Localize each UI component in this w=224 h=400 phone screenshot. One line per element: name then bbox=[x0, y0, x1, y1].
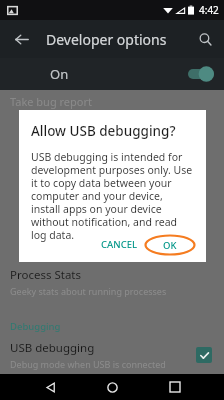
button[interactable]: Back bbox=[8, 26, 34, 52]
button[interactable]: USB debugging checkbox bbox=[196, 347, 212, 363]
staticText: On bbox=[50, 65, 69, 83]
button[interactable]: OK bbox=[144, 234, 196, 256]
staticText: USB debugging is intended for developmen… bbox=[31, 150, 194, 242]
staticText: Process Stats bbox=[10, 267, 82, 283]
staticText: 4:42 bbox=[199, 3, 219, 17]
button[interactable]: Recent apps bbox=[162, 374, 188, 400]
staticText: CANCEL bbox=[101, 238, 138, 251]
staticText: USB debugging bbox=[10, 340, 95, 356]
staticText: OK bbox=[163, 239, 177, 252]
button[interactable]: Process Stats bbox=[0, 264, 224, 300]
button[interactable]: On bbox=[0, 58, 224, 90]
staticText: Developer options bbox=[46, 30, 167, 49]
staticText: Debug mode when USB is connected bbox=[10, 358, 166, 370]
button[interactable]: Search bbox=[192, 26, 218, 52]
button[interactable]: Home bbox=[99, 374, 125, 400]
staticText: Debugging bbox=[10, 320, 61, 333]
staticText: Allow USB debugging? bbox=[31, 122, 176, 140]
staticText: Take bug report bbox=[10, 94, 92, 109]
button[interactable]: USB debugging bbox=[0, 336, 224, 374]
button[interactable]: Back bbox=[37, 374, 63, 400]
staticText: Geeky stats about running processes bbox=[10, 285, 167, 297]
button[interactable]: CANCEL bbox=[95, 233, 144, 256]
